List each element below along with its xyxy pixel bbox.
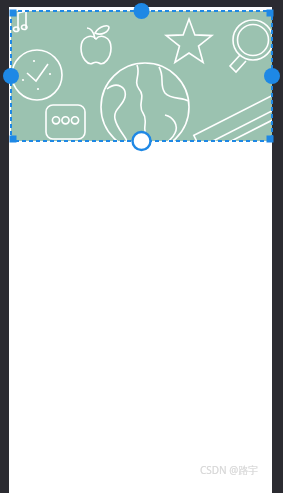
- button[interactable]: Selected banner image: [0, 0, 283, 493]
- staticText: CSDN @路宇: [200, 463, 259, 477]
